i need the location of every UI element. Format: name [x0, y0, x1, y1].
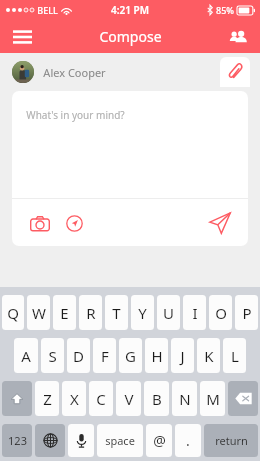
button[interactable]: V: [116, 381, 141, 416]
button[interactable]: Send: [204, 207, 236, 239]
staticText: H: [151, 346, 163, 366]
staticText: L: [231, 346, 239, 366]
staticText: G: [125, 346, 136, 366]
staticText: T: [112, 303, 121, 323]
staticText: D: [73, 346, 84, 366]
button[interactable]: Z: [35, 381, 59, 416]
button[interactable]: O: [209, 295, 232, 330]
button[interactable]: Voice input: [68, 424, 94, 457]
staticText: W: [32, 303, 46, 323]
button[interactable]: X: [62, 381, 86, 416]
button[interactable]: F: [93, 338, 116, 373]
staticText: B: [152, 389, 162, 409]
button[interactable]: Add location: [62, 211, 86, 235]
staticText: space: [105, 433, 135, 448]
staticText: 4:21 PM: [111, 3, 149, 17]
staticText: 85%: [216, 4, 234, 16]
button[interactable]: C: [89, 381, 113, 416]
staticText: O: [215, 303, 227, 323]
staticText: A: [21, 346, 31, 366]
button[interactable]: Alex Cooper: [12, 61, 106, 83]
staticText: Q: [7, 303, 19, 323]
button[interactable]: W: [27, 295, 50, 330]
button[interactable]: Backspace: [228, 381, 258, 416]
button[interactable]: .: [175, 424, 201, 457]
button[interactable]: R: [79, 295, 102, 330]
button[interactable]: Menu: [4, 20, 40, 53]
button[interactable]: Q: [2, 295, 24, 330]
staticText: R: [86, 303, 96, 323]
button[interactable]: N: [172, 381, 197, 416]
staticText: C: [96, 389, 106, 409]
button[interactable]: E: [53, 295, 76, 330]
button[interactable]: G: [119, 338, 142, 373]
staticText: Z: [43, 389, 52, 409]
staticText: 123: [8, 433, 27, 448]
button[interactable]: M: [200, 381, 225, 416]
staticText: BELL: [37, 4, 58, 16]
button[interactable]: K: [197, 338, 220, 373]
button[interactable]: I: [183, 295, 206, 330]
button[interactable]: Contacts: [220, 20, 256, 53]
button[interactable]: Add photo: [28, 211, 52, 235]
button[interactable]: return: [204, 424, 258, 457]
button[interactable]: @: [146, 424, 172, 457]
staticText: .: [186, 431, 190, 450]
button[interactable]: D: [67, 338, 90, 373]
staticText: E: [60, 303, 69, 323]
staticText: F: [101, 346, 109, 366]
staticText: @: [153, 431, 166, 450]
staticText: I: [192, 303, 198, 323]
button[interactable]: T: [105, 295, 128, 330]
button[interactable]: H: [145, 338, 168, 373]
staticText: Compose: [99, 27, 162, 46]
button[interactable]: B: [144, 381, 169, 416]
staticText: P: [242, 303, 252, 323]
button[interactable]: J: [171, 338, 194, 373]
button[interactable]: 123: [2, 424, 32, 457]
button[interactable]: L: [223, 338, 246, 373]
staticText: return: [215, 433, 248, 448]
staticText: N: [179, 389, 191, 409]
staticText: S: [48, 346, 57, 366]
button[interactable]: Attach file: [220, 57, 250, 87]
staticText: V: [124, 389, 134, 409]
button[interactable]: Shift: [2, 381, 32, 416]
staticText: U: [163, 303, 174, 323]
button[interactable]: Y: [131, 295, 154, 330]
button[interactable]: S: [41, 338, 64, 373]
staticText: What's in your mind?: [26, 108, 125, 122]
staticText: X: [70, 389, 79, 409]
staticText: Y: [138, 303, 147, 323]
staticText: J: [180, 346, 185, 366]
button[interactable]: space: [97, 424, 143, 457]
staticText: K: [204, 346, 214, 366]
button[interactable]: Change keyboard language: [35, 424, 65, 457]
button[interactable]: P: [235, 295, 258, 330]
button[interactable]: U: [157, 295, 180, 330]
button[interactable]: A: [14, 338, 38, 373]
staticText: M: [206, 389, 220, 409]
staticText: Alex Cooper: [43, 65, 106, 80]
